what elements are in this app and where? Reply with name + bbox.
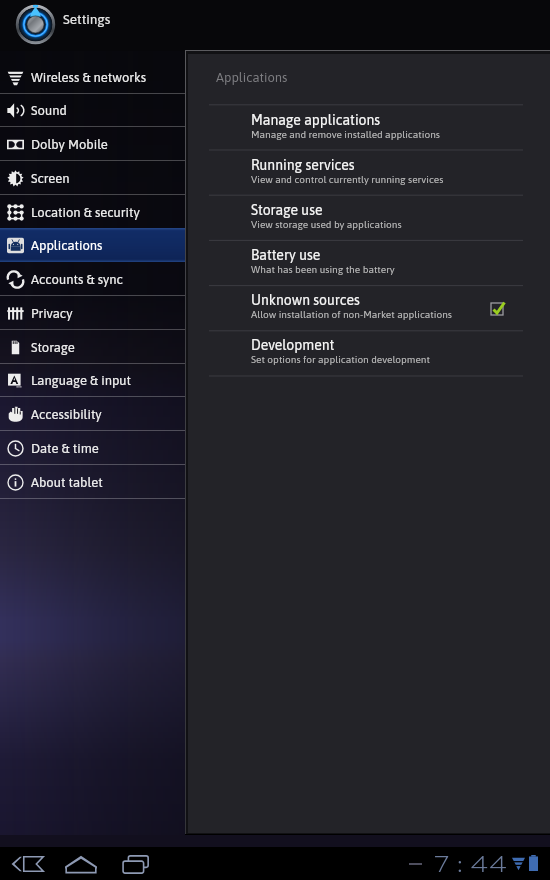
button[interactable]: Status <box>400 847 550 880</box>
button[interactable]: Running services <box>209 150 523 195</box>
staticText: Date & time <box>31 441 99 456</box>
button[interactable]: Location & security <box>0 195 185 229</box>
staticText: Unknown sources <box>251 292 360 308</box>
staticText: Applications <box>216 70 288 85</box>
button[interactable]: Back <box>9 852 45 876</box>
button[interactable]: Recent apps <box>117 852 155 876</box>
staticText: Privacy <box>31 306 73 321</box>
staticText: View storage used by applications <box>251 219 402 231</box>
staticText: Dolby Mobile <box>31 137 108 152</box>
button[interactable]: Applications <box>0 228 185 262</box>
staticText: 7:44 <box>432 851 508 877</box>
button[interactable]: Home <box>62 852 100 876</box>
button[interactable]: Manage applications <box>209 105 523 150</box>
button[interactable]: Settings <box>16 5 55 44</box>
staticText: Language & input <box>31 373 132 388</box>
staticText: Running services <box>251 157 355 173</box>
staticText: Battery use <box>251 247 321 263</box>
button[interactable]: Privacy <box>0 296 185 330</box>
button[interactable]: About tablet <box>0 465 185 499</box>
staticText: Wireless & networks <box>31 70 147 85</box>
staticText: Accessibility <box>31 407 102 422</box>
staticText: View and control currently running servi… <box>251 174 444 186</box>
button[interactable]: Screen <box>0 161 185 195</box>
staticText: Location & security <box>31 205 140 220</box>
button[interactable]: Language & input <box>0 363 185 397</box>
button[interactable]: Battery use <box>209 240 523 285</box>
staticText: Settings <box>63 11 111 26</box>
staticText: Allow installation of non-Market applica… <box>251 309 452 321</box>
button[interactable]: Accessibility <box>0 397 185 431</box>
button[interactable]: Unknown sources <box>209 285 523 330</box>
staticText: Accounts & sync <box>31 272 123 287</box>
staticText: Storage use <box>251 202 323 218</box>
button[interactable]: Sound <box>0 93 185 127</box>
button[interactable]: Development <box>209 330 523 375</box>
staticText: What has been using the battery <box>251 264 395 276</box>
staticText: Storage <box>31 340 75 355</box>
button[interactable]: Storage <box>0 330 185 364</box>
button[interactable]: Dolby Mobile <box>0 127 185 161</box>
staticText: Screen <box>31 171 70 186</box>
staticText: Manage applications <box>251 112 381 128</box>
staticText: Sound <box>31 103 67 118</box>
staticText: Development <box>251 337 335 353</box>
button[interactable]: Storage use <box>209 195 523 240</box>
button[interactable]: Wireless & networks <box>0 60 185 94</box>
button[interactable]: Accounts & sync <box>0 262 185 296</box>
staticText: Applications <box>31 238 103 253</box>
staticText: Set options for application development <box>251 354 430 366</box>
staticText: Manage and remove installed applications <box>251 129 440 141</box>
button[interactable]: Unknown sources checkbox <box>477 291 509 323</box>
staticText: About tablet <box>31 475 103 490</box>
button[interactable]: Date & time <box>0 431 185 465</box>
